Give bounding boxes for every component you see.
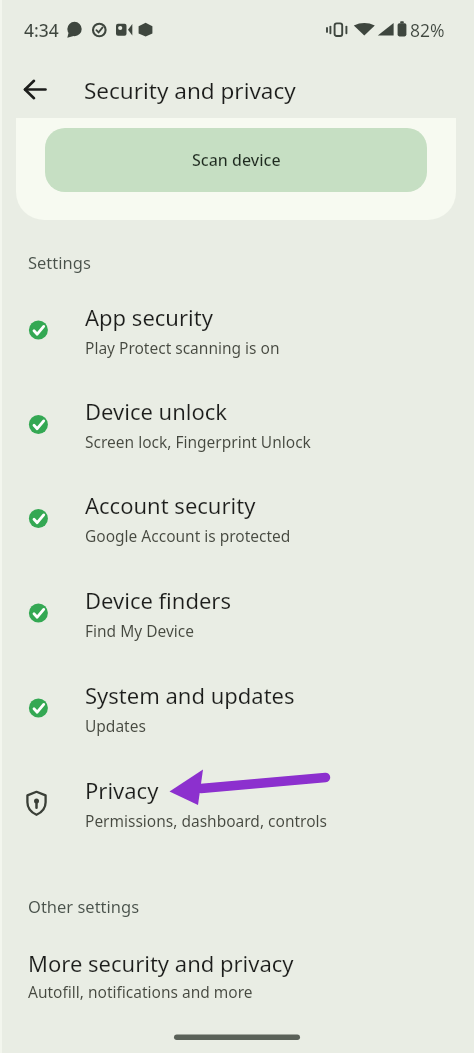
staticText: App security	[85, 302, 213, 332]
button[interactable]	[0, 377, 474, 471]
staticText: Privacy	[85, 775, 159, 805]
button[interactable]	[0, 471, 474, 565]
staticText: Play Protect scanning is on	[85, 337, 280, 358]
staticText: Settings	[28, 251, 91, 273]
staticText: Account security	[85, 490, 256, 520]
staticText: Google Account is protected	[85, 525, 291, 546]
staticText: Updates	[85, 715, 146, 736]
staticText: System and updates	[85, 680, 295, 710]
staticText: Device finders	[85, 585, 231, 615]
staticText: 4:34	[24, 18, 59, 42]
staticText: Screen lock, Fingerprint Unlock	[85, 431, 311, 452]
staticText: Permissions, dashboard, controls	[85, 810, 327, 831]
staticText: More security and privacy	[28, 948, 294, 978]
button[interactable]	[0, 935, 474, 1015]
staticText: Device unlock	[85, 396, 228, 426]
staticText: Find My Device	[85, 620, 194, 641]
staticText: Other settings	[28, 895, 140, 917]
staticText: Autofill, notifications and more	[28, 981, 253, 1002]
button[interactable]	[14, 69, 56, 111]
button[interactable]	[0, 566, 474, 660]
staticText: 82%	[410, 18, 445, 42]
staticText: Security and privacy	[84, 75, 296, 106]
button[interactable]	[0, 756, 474, 850]
button[interactable]: Scan device	[45, 128, 427, 192]
button[interactable]	[0, 661, 474, 755]
button[interactable]	[0, 283, 474, 377]
staticText: Scan device	[192, 149, 281, 171]
